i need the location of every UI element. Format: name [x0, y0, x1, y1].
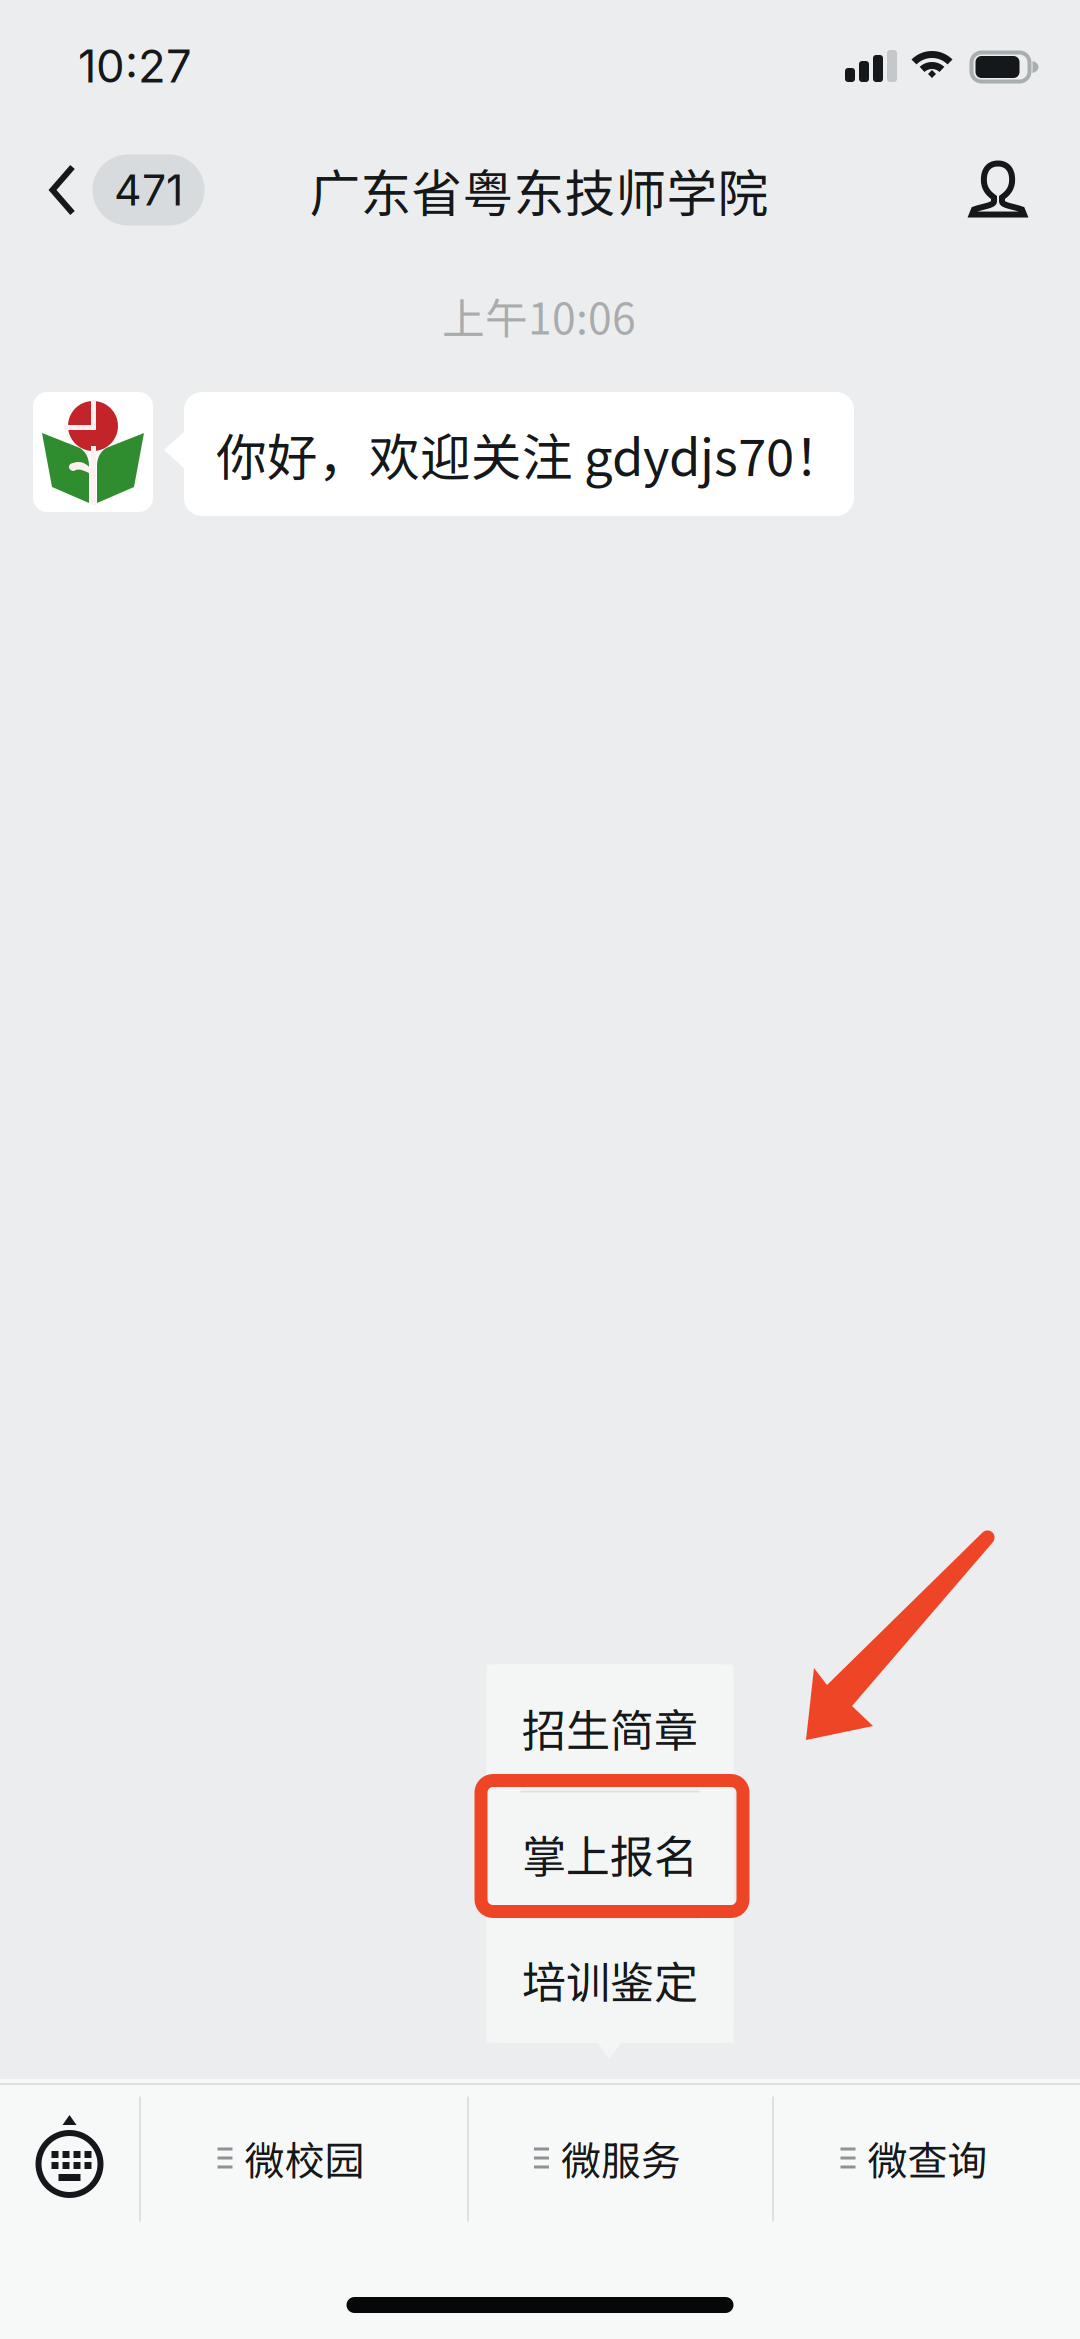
staticText: 微校园: [244, 2129, 364, 2187]
staticText: 471: [114, 164, 183, 216]
button[interactable]: 培训鉴定: [486, 1916, 733, 2042]
staticText: 微查询: [867, 2129, 987, 2187]
button[interactable]: 微校园: [141, 2083, 467, 2223]
staticText: 广东省粤东技师学院: [309, 153, 768, 227]
button[interactable]: Official account profile: [952, 143, 1044, 235]
staticText: 掌上报名: [522, 1822, 698, 1885]
button[interactable]: 招生简章: [486, 1664, 733, 1790]
button[interactable]: Back, 471 unread: [49, 148, 204, 232]
button[interactable]: 微服务: [469, 2083, 772, 2223]
staticText: 微服务: [561, 2129, 681, 2187]
button[interactable]: 掌上报名: [486, 1790, 733, 1916]
staticText: 10:27: [78, 39, 192, 93]
button[interactable]: Keyboard: [0, 2083, 139, 2223]
staticText: 上午10:06: [442, 285, 636, 347]
staticText: 培训鉴定: [522, 1948, 698, 2011]
button[interactable]: 微查询: [774, 2083, 1080, 2223]
staticText: 招生简章: [522, 1696, 698, 1759]
staticText: 你好，欢迎关注 gdydjs70！: [216, 417, 845, 491]
